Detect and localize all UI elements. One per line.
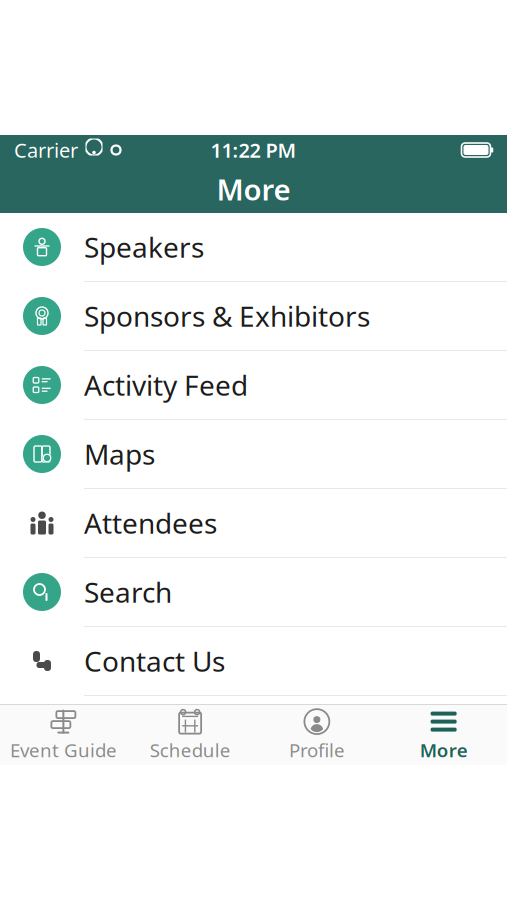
button[interactable]: Contact Us bbox=[0, 627, 507, 696]
button[interactable]: Speakers bbox=[0, 213, 507, 282]
button[interactable]: Sponsors & Exhibitors bbox=[0, 282, 507, 351]
button[interactable]: Maps bbox=[0, 420, 507, 489]
staticText: Search bbox=[84, 573, 172, 611]
staticText: Speakers bbox=[84, 228, 204, 266]
staticText: 11:22 PM bbox=[210, 137, 296, 163]
button[interactable]: Profile bbox=[253, 705, 380, 765]
button[interactable]: Attendees bbox=[0, 489, 507, 558]
staticText: Event Guide bbox=[10, 738, 117, 762]
staticText: Profile bbox=[289, 738, 345, 762]
staticText: More bbox=[216, 169, 290, 208]
button[interactable]: Search bbox=[0, 558, 507, 627]
staticText: Attendees bbox=[84, 504, 217, 542]
staticText: More bbox=[420, 738, 468, 762]
button[interactable]: Activity Feed bbox=[0, 351, 507, 420]
staticText: Sponsors & Exhibitors bbox=[84, 297, 370, 335]
staticText: Carrier bbox=[14, 137, 78, 163]
button[interactable]: Event Guide bbox=[0, 705, 127, 765]
button[interactable]: Schedule bbox=[127, 705, 254, 765]
staticText: Activity Feed bbox=[84, 366, 248, 404]
button[interactable]: More bbox=[380, 705, 507, 765]
staticText: Contact Us bbox=[84, 642, 225, 680]
staticText: Schedule bbox=[150, 738, 231, 762]
staticText: Maps bbox=[84, 435, 155, 473]
